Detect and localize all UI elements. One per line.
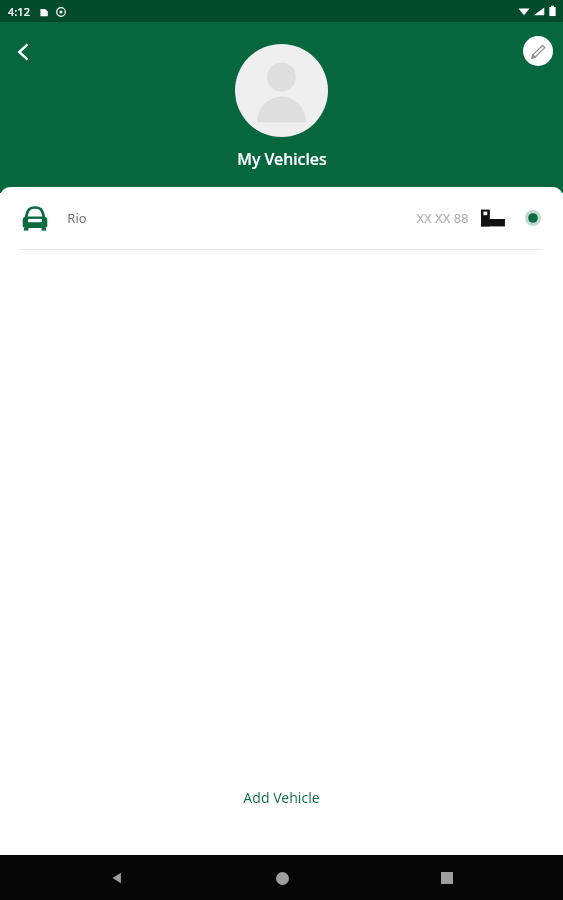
button[interactable]: Home: [262, 858, 302, 898]
staticText: Add Vehicle: [243, 788, 320, 807]
staticText: My Vehicles: [237, 148, 327, 170]
button[interactable]: Back: [2, 30, 46, 74]
staticText: Rio: [67, 209, 87, 227]
staticText: 4:12: [8, 4, 30, 19]
button[interactable]: Recent apps: [427, 858, 467, 898]
button[interactable]: Profile photo: [235, 44, 328, 137]
button[interactable]: Rio: [0, 187, 563, 249]
button[interactable]: Add Vehicle: [0, 775, 563, 819]
button[interactable]: Edit profile: [523, 36, 553, 66]
button[interactable]: Back: [97, 858, 137, 898]
staticText: XX XX 88: [416, 209, 469, 227]
button[interactable]: Select vehicle: [521, 206, 545, 230]
